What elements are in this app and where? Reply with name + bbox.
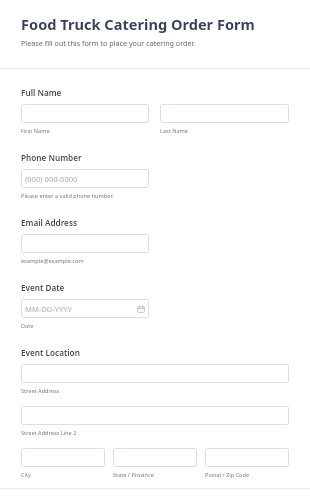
button[interactable] [113, 448, 197, 467]
button[interactable] [21, 448, 105, 467]
button[interactable] [205, 448, 289, 467]
staticText: Last Name [160, 127, 188, 135]
staticText: example@example.com [21, 257, 84, 265]
staticText: MM-DD-YYYY [25, 304, 72, 314]
staticText: Food Truck Catering Order Form [21, 14, 255, 34]
button[interactable]: (000) 000-0000 [21, 169, 149, 188]
button[interactable] [21, 364, 289, 383]
staticText: Event Location [21, 347, 80, 358]
staticText: City [21, 471, 31, 479]
button[interactable] [21, 234, 149, 253]
button[interactable] [21, 406, 289, 425]
button[interactable] [160, 104, 289, 123]
button[interactable] [21, 104, 149, 123]
staticText: Date [21, 322, 34, 330]
staticText: State / Province [113, 471, 154, 479]
staticText: Please enter a valid phone number. [21, 192, 114, 200]
staticText: Email Address [21, 217, 77, 228]
staticText: Postal / Zip Code [205, 471, 250, 479]
staticText: First Name [21, 127, 50, 135]
staticText: Phone Number [21, 152, 82, 163]
other: Pick date [137, 305, 145, 313]
staticText: Street Address [21, 387, 60, 395]
staticText: Event Date [21, 282, 65, 293]
staticText: Street Address Line 2 [21, 429, 77, 437]
button[interactable]: MM-DD-YYYY [21, 299, 149, 318]
staticText: (000) 000-0000 [25, 174, 78, 184]
staticText: Full Name [21, 87, 62, 98]
staticText: Please fill out this form to place your … [21, 38, 196, 48]
